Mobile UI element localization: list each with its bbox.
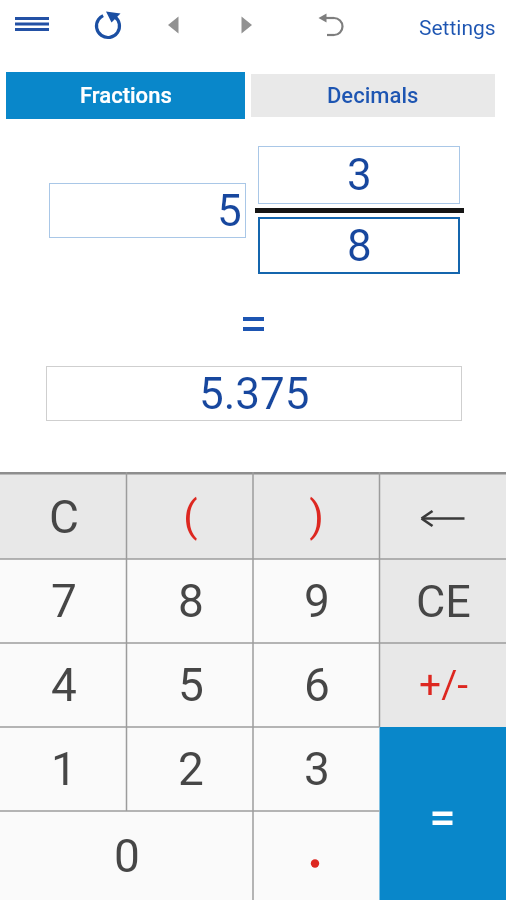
staticText: ) — [309, 492, 324, 541]
staticText: 2 — [178, 742, 204, 796]
staticText: 5 — [178, 658, 204, 712]
staticText: 4 — [51, 658, 77, 712]
staticText: Settings — [419, 16, 496, 41]
staticText: 3 — [347, 149, 372, 201]
staticText: 5.375 — [199, 368, 310, 420]
staticText: C — [49, 490, 79, 544]
staticText: 3 — [304, 742, 330, 796]
staticText: 8 — [347, 220, 372, 272]
staticText: 1 — [51, 742, 77, 796]
staticText: Fractions — [80, 83, 172, 109]
staticText: Decimals — [327, 83, 419, 109]
staticText: 6 — [304, 658, 330, 712]
staticText: 5 — [217, 185, 242, 237]
staticText: CE — [416, 575, 471, 628]
staticText: ( — [183, 492, 198, 541]
staticText: +/- — [419, 662, 468, 708]
staticText: 9 — [304, 574, 330, 628]
staticText: 7 — [51, 574, 77, 628]
staticText: 0 — [114, 829, 140, 883]
staticText: 8 — [178, 574, 204, 628]
